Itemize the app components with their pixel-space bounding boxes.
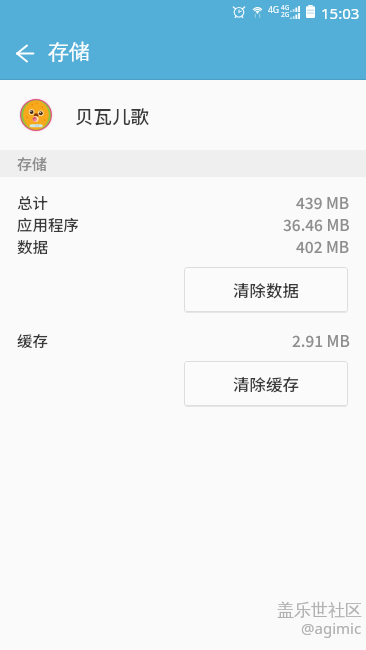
staticText: @agimic: [301, 618, 362, 638]
button[interactable]: Back: [1, 29, 49, 77]
staticText: 存储: [48, 39, 90, 65]
staticText: 缓存: [17, 329, 49, 351]
staticText: 存储: [17, 153, 48, 175]
staticText: 清除缓存: [233, 372, 299, 396]
staticText: 4G: [281, 3, 290, 12]
staticText: 应用程序: [17, 213, 80, 235]
staticText: 总计: [17, 191, 49, 213]
staticText: 402 MB: [296, 235, 350, 257]
staticText: 清除数据: [233, 278, 299, 302]
staticText: 盖乐世社区: [277, 600, 362, 621]
button[interactable]: 清除数据: [184, 267, 348, 312]
staticText: 4G: [268, 4, 280, 16]
staticText: 贝瓦儿歌: [75, 103, 150, 130]
staticText: 439 MB: [296, 191, 350, 213]
staticText: 2G: [281, 10, 290, 19]
staticText: 2.91 MB: [292, 329, 350, 351]
staticText: 15:03: [321, 3, 360, 23]
staticText: 36.46 MB: [283, 213, 350, 235]
staticText: 数据: [17, 235, 49, 257]
button[interactable]: 清除缓存: [184, 361, 348, 406]
